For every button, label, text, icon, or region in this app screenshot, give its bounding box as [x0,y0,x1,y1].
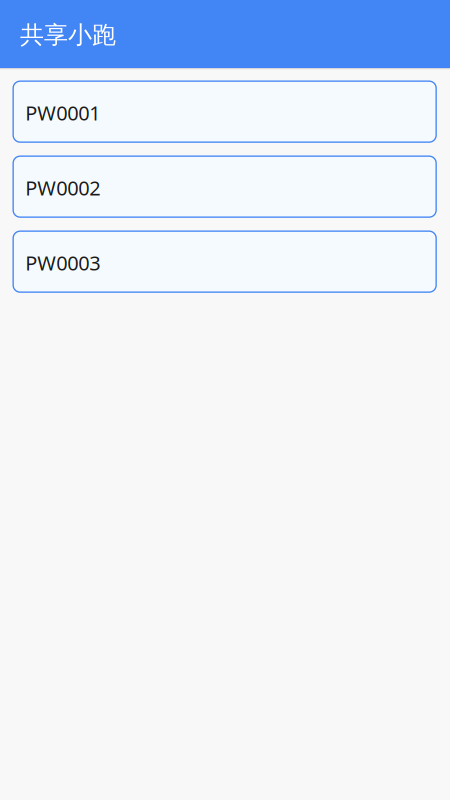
staticText: PW0002 [25,174,100,201]
button[interactable]: PW0003 [13,231,436,292]
staticText: PW0001 [25,99,100,126]
staticText: 共享小跑 [20,20,116,50]
button[interactable]: PW0001 [13,81,436,142]
staticText: PW0003 [25,249,100,276]
button[interactable]: PW0002 [13,156,436,217]
